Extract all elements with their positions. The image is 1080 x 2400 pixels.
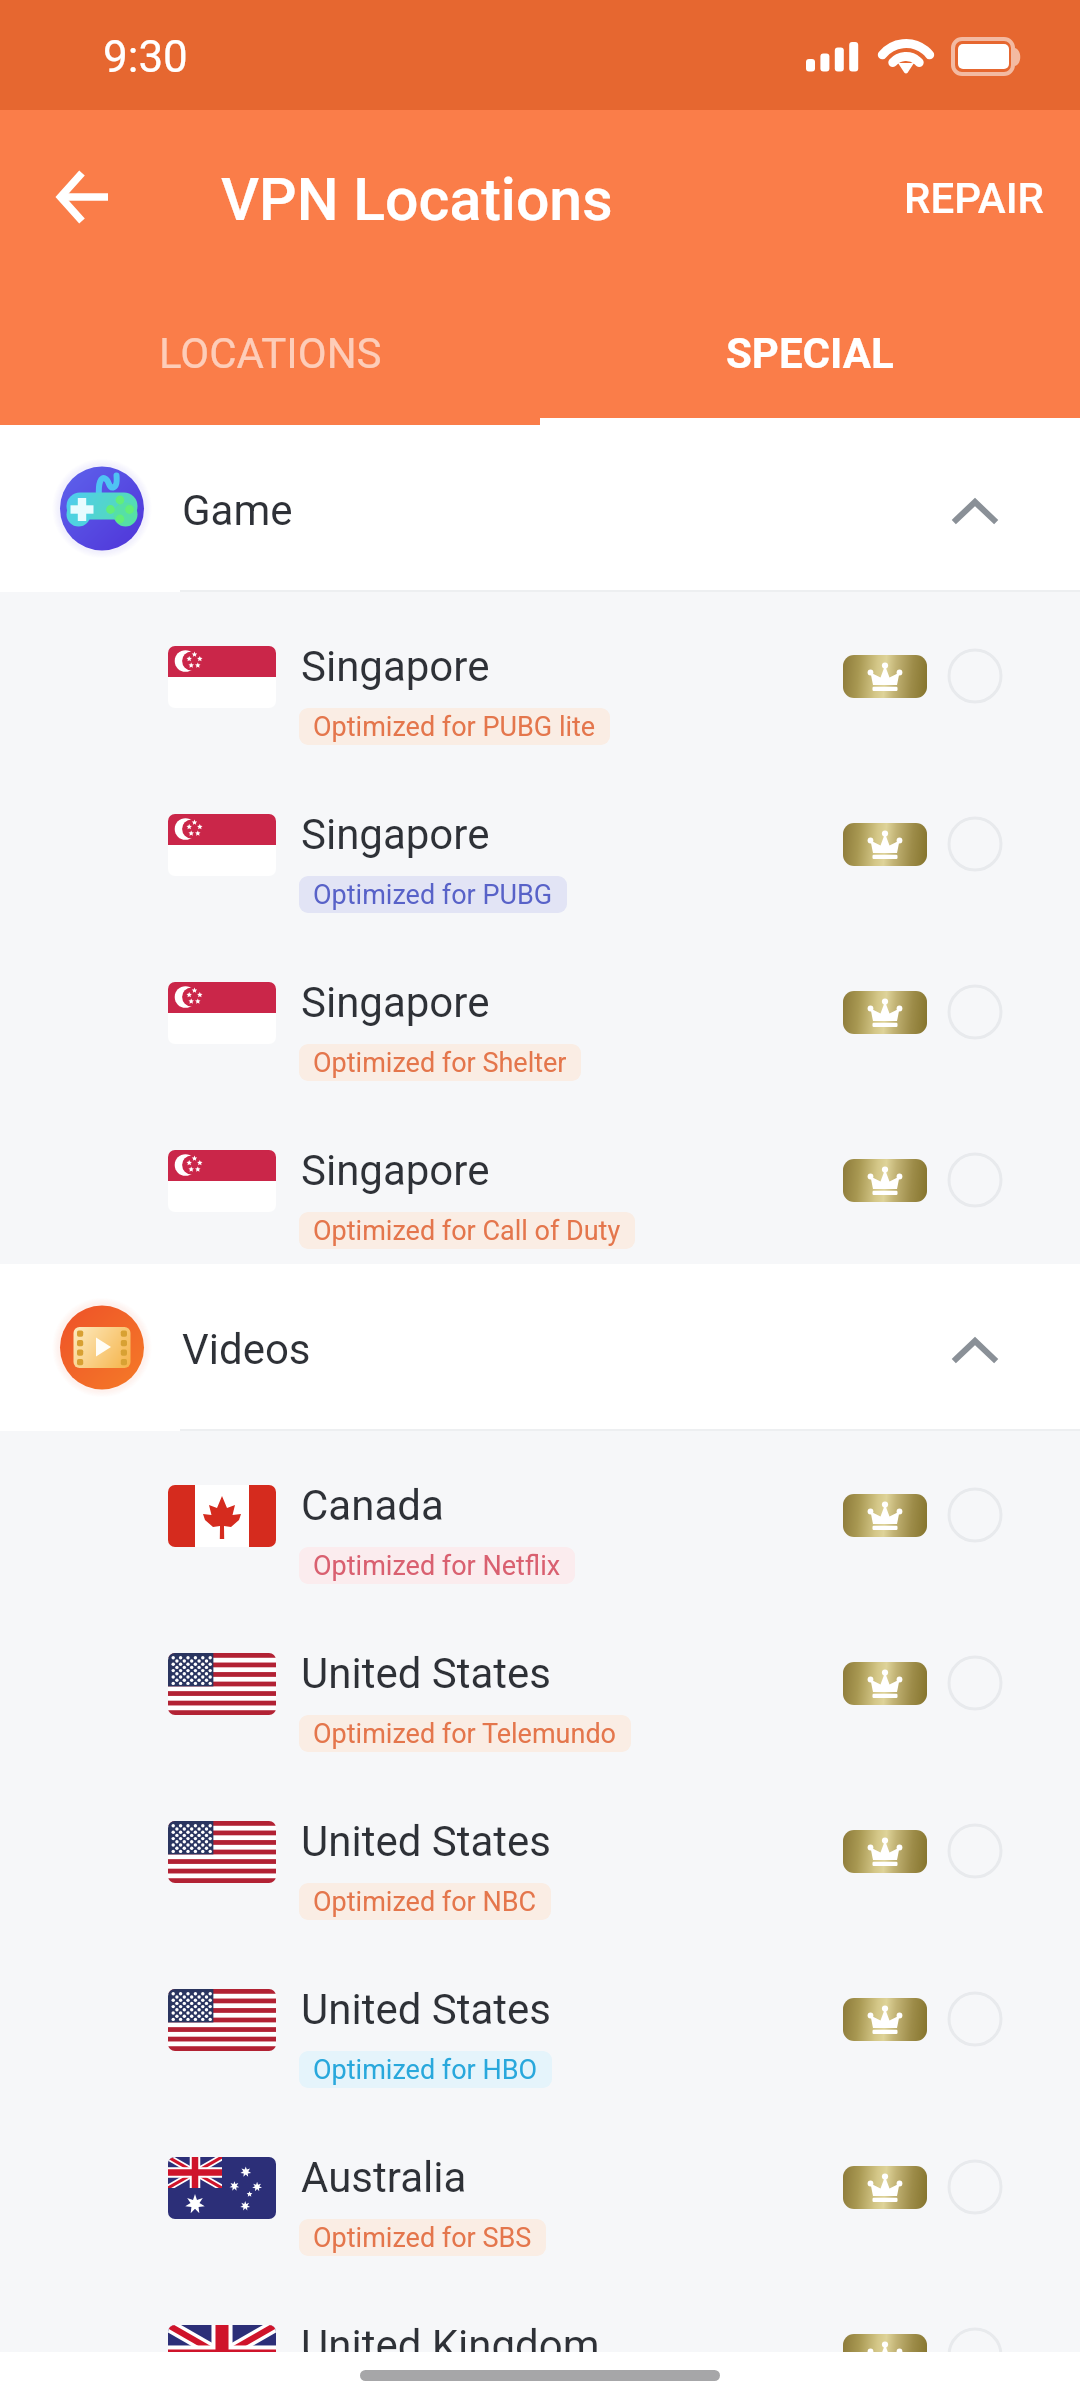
- button[interactable]: LOCATIONS: [0, 303, 540, 403]
- staticText: Singapore: [301, 978, 490, 1027]
- button[interactable]: Singapore: [0, 928, 1080, 1096]
- button[interactable]: SPECIAL: [540, 303, 1080, 403]
- staticText: Canada: [301, 1481, 444, 1530]
- staticText: Optimized for Telemundo: [313, 1718, 617, 1750]
- button[interactable]: Singapore: [0, 760, 1080, 928]
- staticText: Optimized for Netflix: [313, 1550, 561, 1582]
- staticText: SPECIAL: [726, 329, 894, 378]
- staticText: Singapore: [301, 642, 490, 691]
- staticText: 9:30: [103, 31, 188, 83]
- button[interactable]: Singapore: [0, 592, 1080, 760]
- staticText: United States: [301, 1817, 551, 1866]
- staticText: United States: [301, 1649, 551, 1698]
- staticText: Optimized for PUBG: [313, 879, 553, 911]
- button[interactable]: Australia: [0, 2103, 1080, 2271]
- staticText: LOCATIONS: [159, 329, 382, 378]
- button[interactable]: REPAIR: [874, 148, 1074, 248]
- staticText: Optimized for Call of Duty: [313, 1215, 621, 1247]
- staticText: Videos: [182, 1325, 311, 1374]
- button[interactable]: Back: [29, 142, 135, 248]
- staticText: VPN Locations: [221, 165, 613, 234]
- staticText: REPAIR: [904, 174, 1045, 223]
- button[interactable]: United States: [0, 1599, 1080, 1767]
- button[interactable]: Videos: [0, 1264, 1080, 1431]
- button[interactable]: Game: [0, 425, 1080, 592]
- staticText: Australia: [301, 2153, 467, 2202]
- staticText: Optimized for NBC: [313, 1886, 537, 1918]
- button[interactable]: Canada: [0, 1431, 1080, 1599]
- staticText: United States: [301, 1985, 551, 2034]
- button[interactable]: Singapore: [0, 1096, 1080, 1264]
- staticText: Optimized for PUBG lite: [313, 711, 596, 743]
- staticText: Optimized for Shelter: [313, 1047, 567, 1079]
- staticText: Game: [182, 486, 293, 535]
- button[interactable]: United Kingdom: [0, 2271, 1080, 2400]
- button[interactable]: United States: [0, 1767, 1080, 1935]
- staticText: Optimized for HBO: [313, 2054, 538, 2086]
- button[interactable]: United States: [0, 1935, 1080, 2103]
- staticText: Singapore: [301, 1146, 490, 1195]
- staticText: Optimized for SBS: [313, 2222, 532, 2254]
- staticText: Singapore: [301, 810, 490, 859]
- staticText: United Kingdom: [301, 2321, 600, 2370]
